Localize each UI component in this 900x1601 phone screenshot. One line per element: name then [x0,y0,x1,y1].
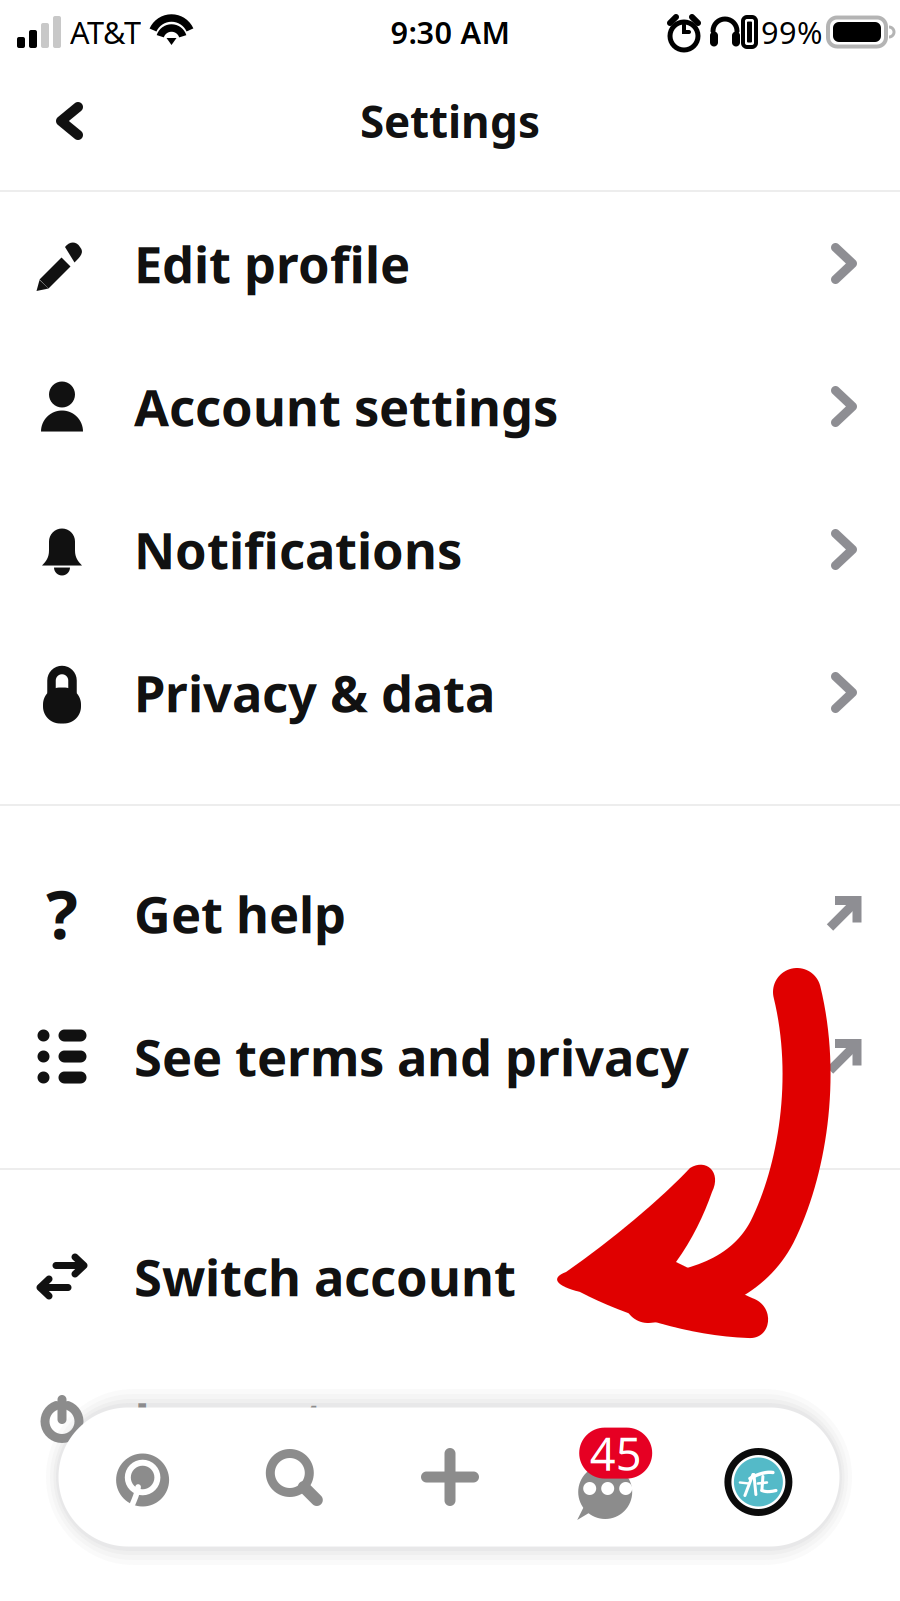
button[interactable]: Log out [0,1348,900,1491]
staticText: Notifications [134,516,462,583]
staticText: 99% [761,12,822,52]
button[interactable]: Back [32,80,108,174]
staticText: See terms and privacy [134,1023,689,1090]
staticText: Account settings [134,373,558,440]
button[interactable]: Notifications [0,478,900,621]
staticText: ? [46,869,78,958]
button[interactable]: Profile [683,1407,839,1546]
button[interactable]: Privacy & data [0,621,900,764]
button[interactable]: Edit profile [0,192,900,335]
button[interactable]: Switch account [0,1205,900,1348]
button[interactable]: Create [371,1407,527,1546]
staticText: Get help [134,880,346,947]
button[interactable]: Search [215,1407,371,1546]
staticText: AT&T [70,12,141,52]
staticText: Switch account [134,1243,516,1310]
staticText: Log out [134,1386,326,1453]
staticText: Settings [360,92,540,150]
button[interactable]: Account settings [0,335,900,478]
button[interactable]: Messages [527,1407,683,1546]
button[interactable]: Home [58,1407,215,1546]
button[interactable]: ? [0,842,900,985]
button[interactable]: See terms and privacy [0,985,900,1128]
staticText: Privacy & data [134,659,495,726]
staticText: Edit profile [134,230,410,297]
staticText: 9:30 AM [390,12,509,52]
staticText: 45 [590,1423,642,1483]
